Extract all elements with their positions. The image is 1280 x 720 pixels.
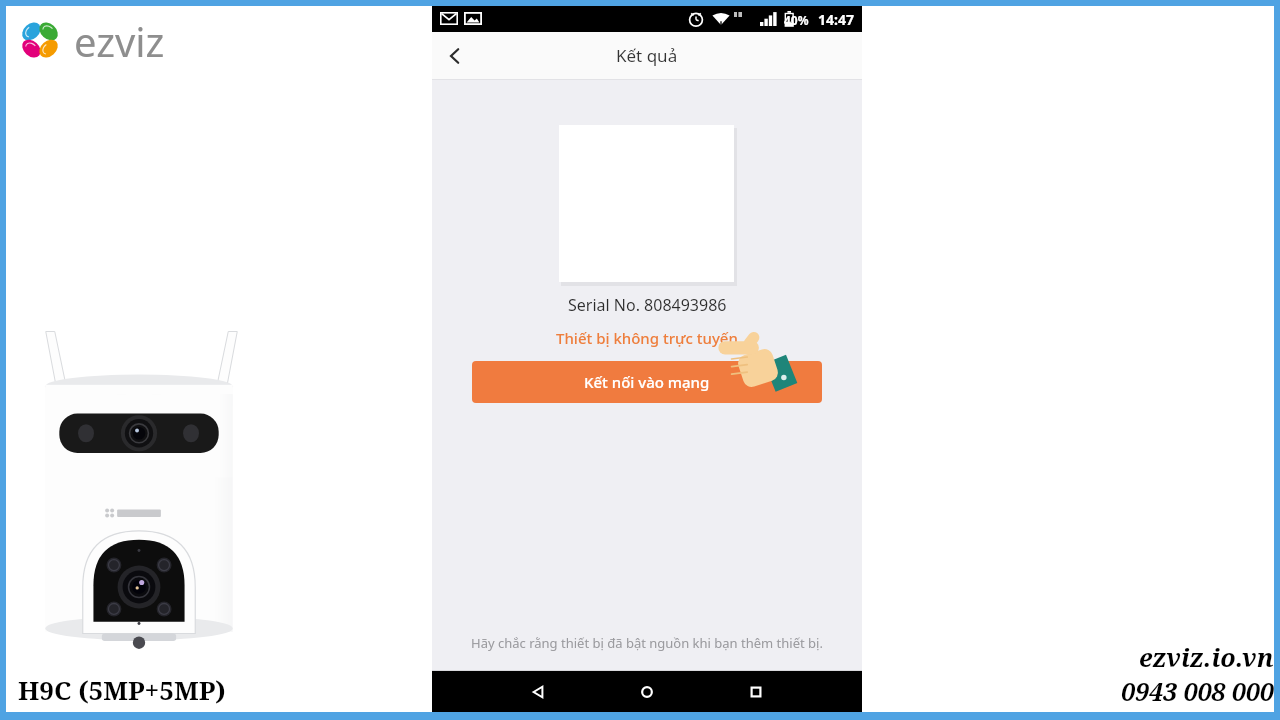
button[interactable]: Back (484, 671, 592, 712)
staticText: Kết quả (616, 44, 678, 67)
staticText: Hãy chắc rằng thiết bị đã bật nguồn khi … (471, 634, 823, 652)
button[interactable]: Back (432, 33, 478, 79)
staticText: Kết nối vào mạng (584, 372, 710, 392)
staticText: ezviz.io.vn (1139, 640, 1274, 674)
staticText: Thiết bị không trực tuyến (556, 328, 738, 348)
staticText: 0943 008 000 (1121, 674, 1274, 708)
staticText: H9C (5MP+5MP) (18, 672, 226, 707)
button[interactable]: Kết nối vào mạng (472, 361, 822, 403)
staticText: 40% (784, 12, 809, 28)
staticText: ezviz (74, 14, 165, 66)
staticText: 14:47 (818, 10, 854, 29)
button[interactable]: Home (592, 671, 701, 712)
button[interactable]: Recents (701, 671, 810, 712)
staticText: Serial No. 808493986 (568, 294, 727, 316)
